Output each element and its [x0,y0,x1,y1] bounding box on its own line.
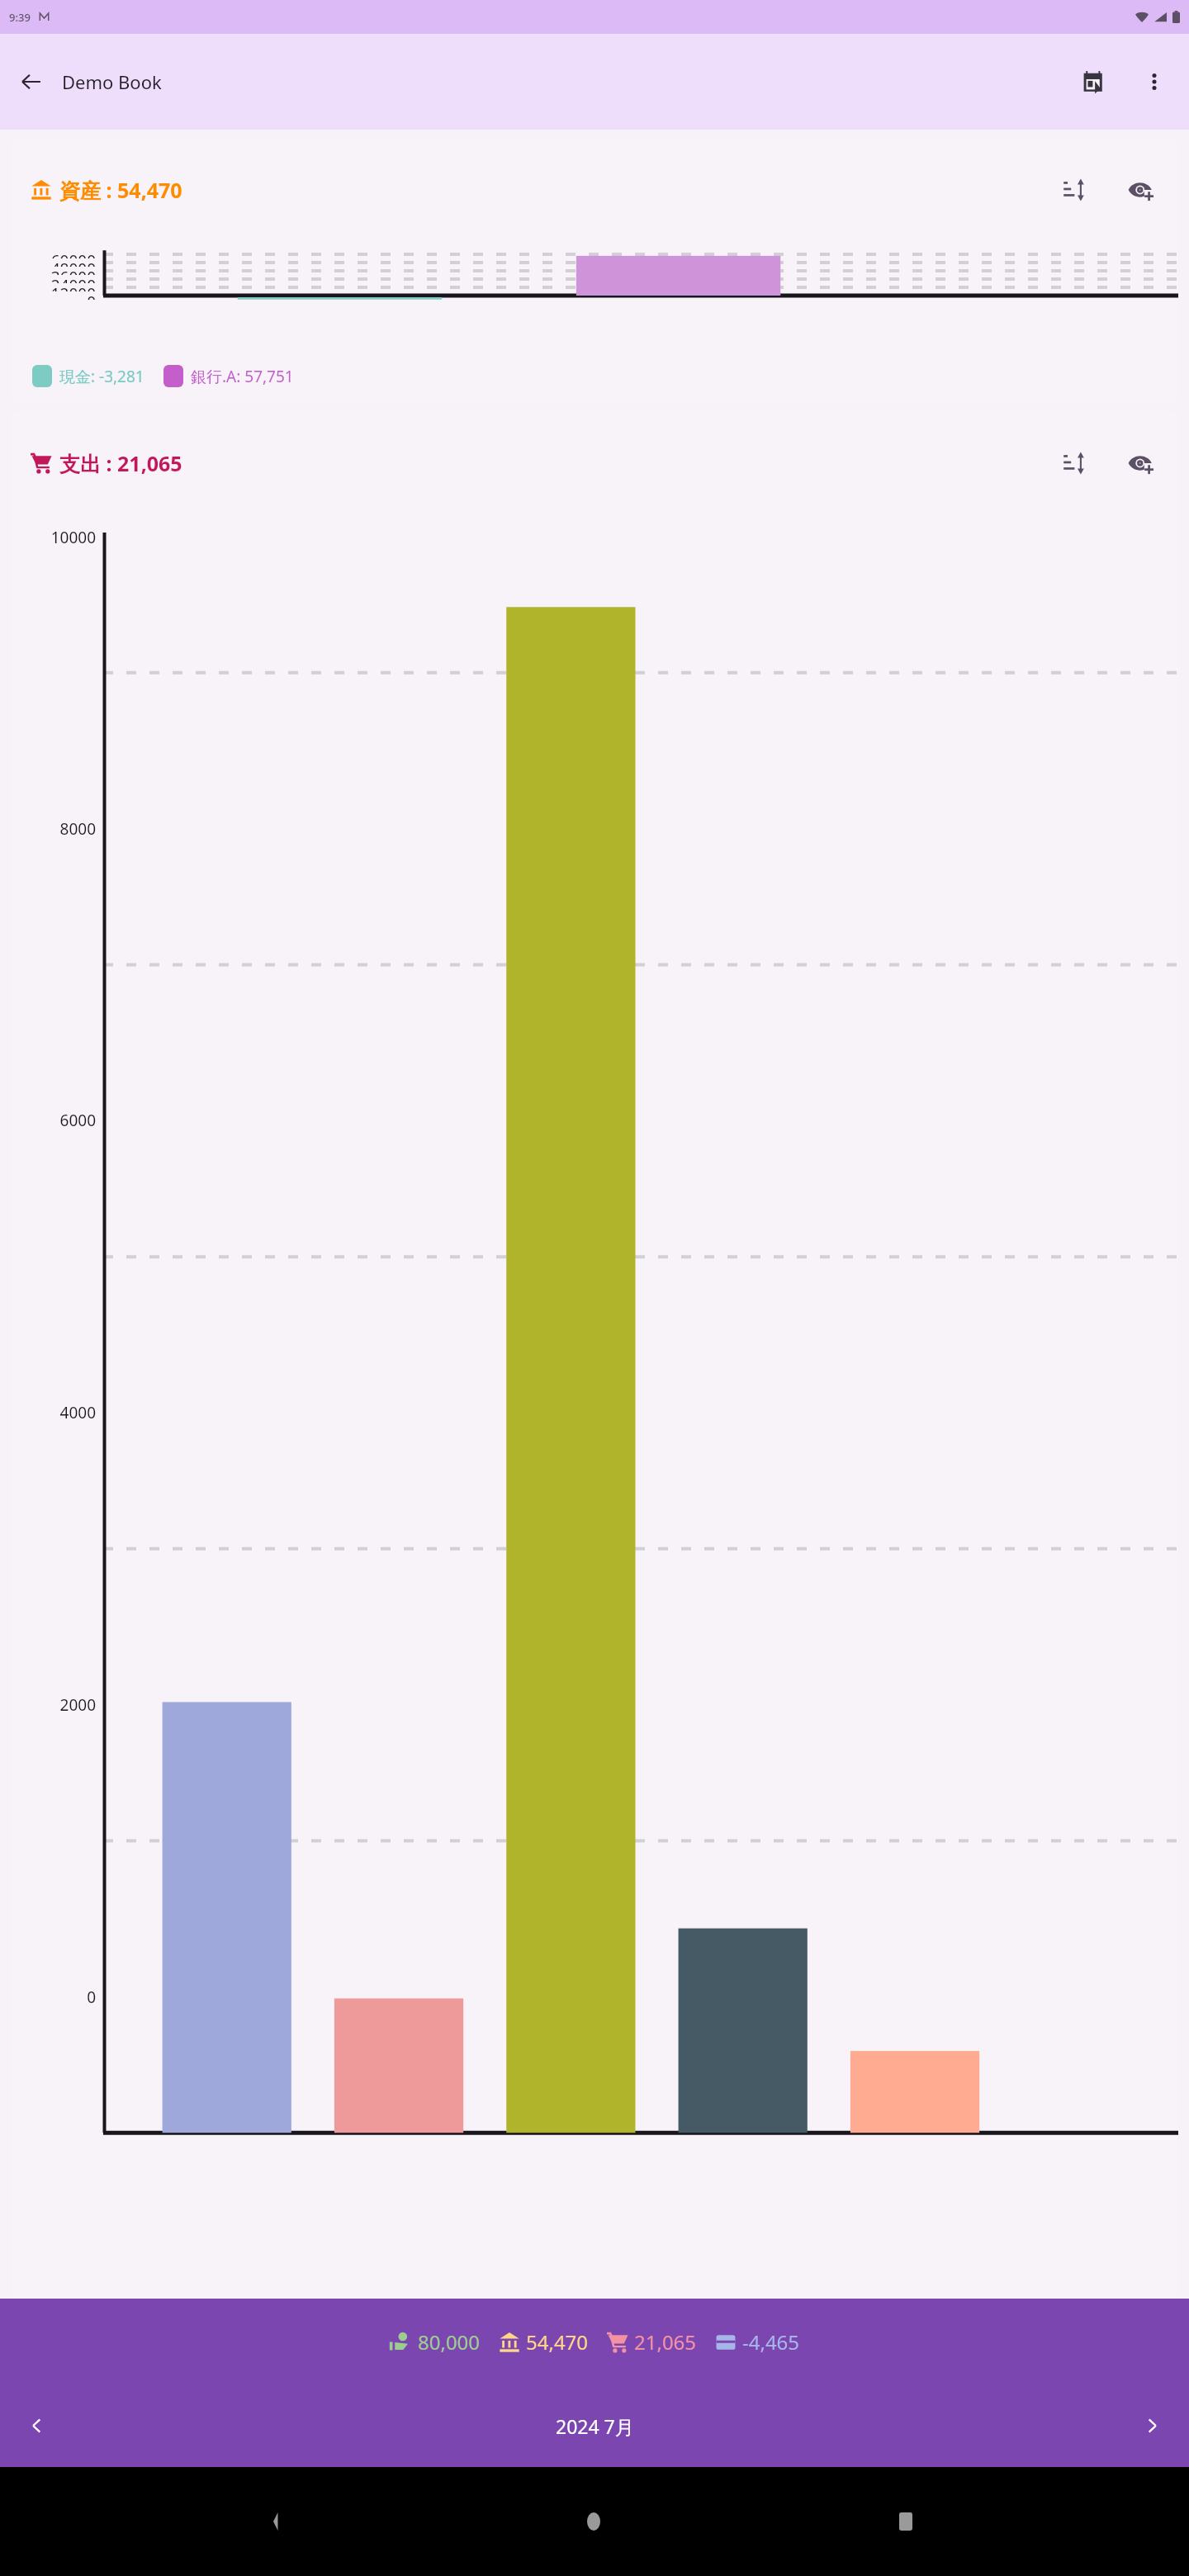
button[interactable]: 支出 : 21,065 [11,411,1178,2299]
staticText: Demo Book [62,69,162,94]
staticText: 6000 [59,1110,96,1131]
staticText: 2024 7月 [556,2413,634,2439]
staticText: 60000 [50,250,96,258]
button[interactable]: Sort [1054,169,1096,211]
button[interactable]: Recent apps [877,2493,935,2550]
staticText: -4,465 [742,2328,800,2356]
button[interactable]: -4,465 [715,2328,800,2356]
button[interactable]: Previous month [12,2401,61,2451]
button[interactable]: 80,000 [389,2328,481,2356]
staticText: 48000 [50,258,96,267]
staticText: 2000 [59,1694,96,1716]
staticText: 9:39 [9,10,31,25]
staticText: 10000 [50,527,96,548]
staticText: 0 [87,291,96,300]
staticText: 現金: -3,281 [59,366,144,387]
button[interactable]: 銀行.A: 57,751 [163,365,294,387]
staticText: 36000 [50,267,96,275]
button[interactable]: Back [8,59,54,105]
button[interactable]: 54,470 [499,2328,589,2356]
button[interactable]: Select date [1070,59,1116,105]
staticText: 21,065 [634,2328,697,2356]
button[interactable]: 現金: -3,281 [32,365,144,387]
button[interactable]: Next month [1128,2401,1177,2451]
staticText: 0 [87,1986,96,2008]
button[interactable]: 支出 : 21,065 [31,449,182,477]
staticText: 銀行.A: 57,751 [191,366,294,387]
button[interactable]: Home [565,2493,623,2550]
staticText: 支出 : 21,065 [59,449,182,477]
staticText: 4000 [59,1402,96,1423]
staticText: 24000 [50,275,96,283]
button[interactable]: Back [253,2493,311,2550]
button[interactable]: Sort [1054,443,1096,484]
button[interactable]: 資産 : 54,470 [11,138,1178,402]
staticText: 54,470 [526,2328,589,2356]
staticText: 資産 : 54,470 [59,176,182,204]
staticText: 12000 [50,283,96,291]
staticText: 8000 [59,818,96,840]
button[interactable]: More options [1131,59,1177,105]
button[interactable]: Show hidden [1120,443,1162,484]
button[interactable]: Show hidden [1120,169,1162,211]
staticText: 80,000 [418,2328,481,2356]
button[interactable]: 21,065 [607,2328,697,2356]
button[interactable]: 資産 : 54,470 [31,176,182,204]
